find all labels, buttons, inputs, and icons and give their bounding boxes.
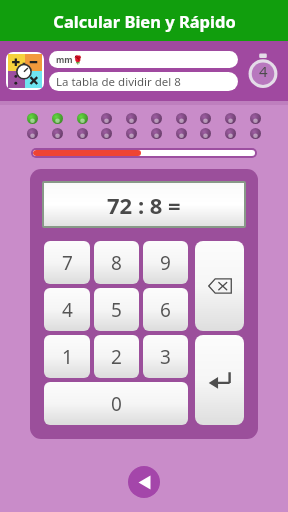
- button[interactable]: App icon: [8, 54, 42, 88]
- button[interactable]: Backspace: [195, 241, 244, 331]
- staticText: 9: [160, 250, 171, 276]
- button[interactable]: 5: [94, 288, 139, 331]
- button[interactable]: 8: [94, 241, 139, 284]
- button[interactable]: Enter: [195, 335, 244, 425]
- staticText: Calcular Bien y Rápido: [53, 10, 236, 32]
- button[interactable]: La tabla de dividir del 8: [49, 72, 238, 91]
- button[interactable]: mm🌹: [49, 51, 238, 68]
- staticText: 72 : 8 =: [107, 190, 181, 220]
- staticText: 3: [160, 344, 171, 370]
- button[interactable]: 2: [94, 335, 139, 378]
- staticText: 5: [111, 297, 122, 323]
- button[interactable]: Back: [128, 466, 160, 498]
- staticText: 4: [259, 61, 268, 81]
- button[interactable]: 7: [44, 241, 90, 284]
- staticText: 7: [62, 250, 73, 276]
- staticText: 1: [62, 344, 73, 370]
- staticText: 0: [111, 391, 122, 417]
- button[interactable]: 1: [44, 335, 90, 378]
- button[interactable]: 9: [143, 241, 188, 284]
- button[interactable]: 4: [44, 288, 90, 331]
- staticText: 6: [160, 297, 171, 323]
- staticText: 4: [62, 297, 73, 323]
- button[interactable]: 6: [143, 288, 188, 331]
- staticText: mm🌹: [56, 54, 84, 66]
- staticText: 2: [111, 344, 122, 370]
- button[interactable]: 0: [44, 382, 188, 425]
- button[interactable]: 3: [143, 335, 188, 378]
- staticText: La tabla de dividir del 8: [56, 74, 181, 90]
- button[interactable]: Timer: [244, 52, 282, 90]
- staticText: 8: [111, 250, 122, 276]
